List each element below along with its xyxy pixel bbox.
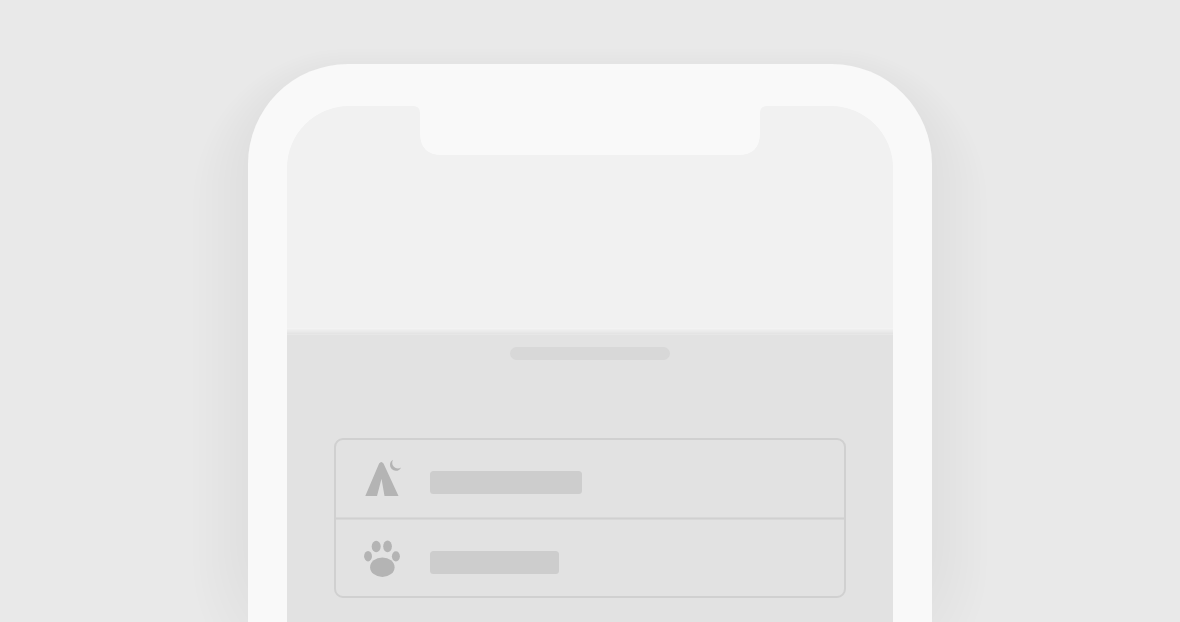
- button[interactable]: Camping at night: [336, 440, 844, 519]
- button[interactable]: Pets allowed: [336, 520, 844, 597]
